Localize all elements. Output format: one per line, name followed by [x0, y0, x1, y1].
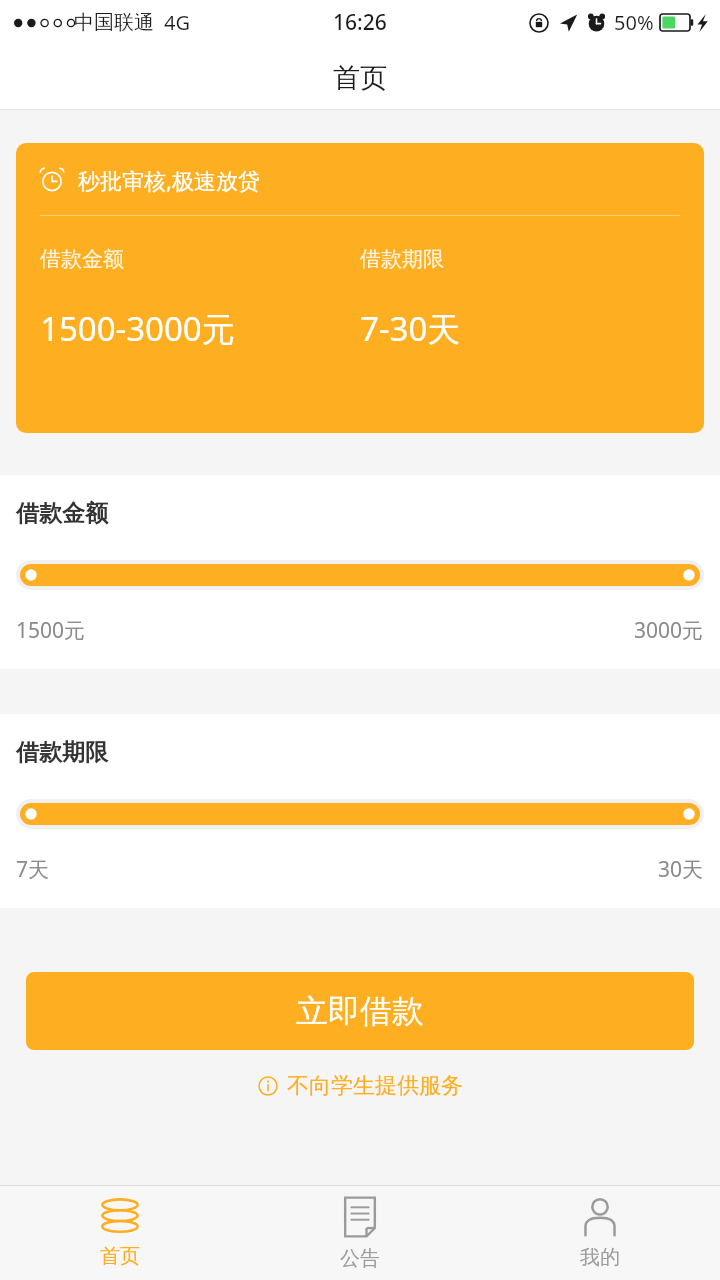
staticText: 首页 — [100, 1244, 140, 1269]
staticText: 秒批审核,极速放贷 — [78, 165, 260, 195]
staticText: 借款金额 — [16, 499, 108, 528]
button[interactable]: 不向学生提供服务 — [0, 1072, 720, 1100]
staticText: 4G — [164, 9, 190, 36]
staticText: 50% — [614, 9, 654, 36]
staticText: 借款期限 — [360, 246, 444, 272]
button[interactable]: 我的 — [480, 1186, 720, 1280]
button[interactable]: 秒批审核,极速放贷 — [16, 143, 704, 433]
button[interactable] — [16, 560, 704, 590]
staticText: 3000元 — [634, 616, 704, 645]
staticText: 首页 — [333, 61, 387, 95]
staticText: 7-30天 — [360, 306, 461, 351]
staticText: 中国联通 — [74, 10, 154, 35]
staticText: 不向学生提供服务 — [287, 1072, 463, 1100]
staticText: 30天 — [658, 855, 704, 884]
button[interactable]: 立即借款 — [26, 972, 694, 1050]
staticText: 立即借款 — [296, 991, 424, 1031]
button[interactable] — [16, 799, 704, 829]
staticText: 借款期限 — [16, 738, 108, 767]
staticText: 1500元 — [16, 616, 86, 645]
staticText: 我的 — [580, 1245, 620, 1270]
staticText: 1500-3000元 — [40, 306, 235, 351]
staticText: 7天 — [16, 855, 50, 884]
staticText: 公告 — [340, 1246, 380, 1271]
button[interactable]: 首页 — [0, 1186, 240, 1280]
staticText: 借款金额 — [40, 246, 124, 272]
staticText: 16:26 — [333, 8, 387, 37]
button[interactable]: 公告 — [240, 1186, 480, 1280]
